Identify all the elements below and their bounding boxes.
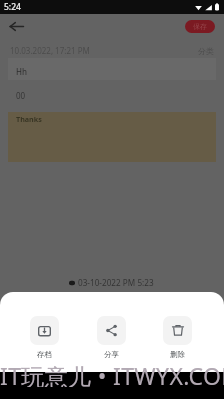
- staticText: 分享: [104, 350, 119, 359]
- button[interactable]: Share: [97, 316, 126, 359]
- staticText: 删除: [170, 350, 185, 359]
- button[interactable]: Archive: [30, 316, 59, 359]
- staticText: 5:24: [4, 1, 21, 13]
- staticText: 保存: [193, 22, 207, 31]
- staticText: IT玩意儿 • ITWYX.COM: [0, 360, 224, 387]
- staticText: Thanks: [16, 114, 42, 124]
- button[interactable]: Back: [4, 14, 28, 38]
- staticText: 存档: [37, 350, 52, 359]
- button[interactable]: 保存: [185, 20, 215, 33]
- button[interactable]: 分类: [198, 46, 214, 56]
- staticText: 10.03.2022, 17:21 PM: [10, 45, 90, 56]
- staticText: 03-10-2022 PM 5:23: [78, 277, 154, 288]
- button[interactable]: Delete: [163, 316, 192, 359]
- staticText: 00: [16, 90, 26, 101]
- staticText: Hh: [16, 66, 27, 77]
